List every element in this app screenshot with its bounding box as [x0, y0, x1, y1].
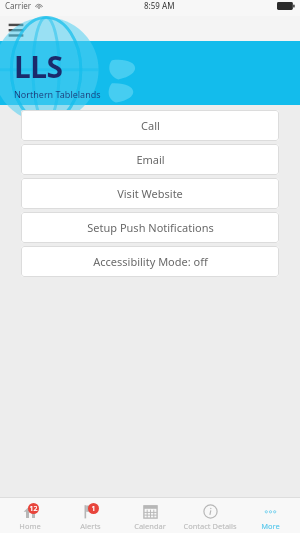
- staticText: Carrier: [5, 0, 32, 11]
- button[interactable]: Visit Website: [21, 178, 279, 209]
- staticText: Contact Details: [183, 521, 237, 531]
- button[interactable]: Accessibility Mode: off: [21, 246, 279, 277]
- staticText: Accessibility Mode: off: [93, 254, 208, 269]
- button[interactable]: Email: [21, 144, 279, 175]
- staticText: More: [261, 521, 280, 531]
- staticText: 12: [29, 504, 38, 514]
- button[interactable]: 1: [60, 500, 120, 531]
- staticText: Email: [136, 152, 165, 167]
- button[interactable]: Setup Push Notifications: [21, 212, 279, 243]
- staticText: Call: [141, 118, 160, 133]
- button[interactable]: Call: [21, 110, 279, 141]
- staticText: 8:59 AM: [144, 0, 175, 11]
- staticText: Home: [19, 521, 41, 531]
- staticText: LLS: [14, 46, 63, 87]
- button[interactable]: Contact Details: [180, 500, 240, 531]
- staticText: 1: [91, 504, 96, 514]
- staticText: Northern Tablelands: [14, 88, 101, 100]
- staticText: Alerts: [80, 521, 101, 531]
- button[interactable]: 12: [0, 500, 60, 531]
- button[interactable]: More: [240, 500, 300, 531]
- staticText: Setup Push Notifications: [87, 220, 214, 235]
- button[interactable]: Calendar: [120, 500, 180, 531]
- staticText: Calendar: [134, 521, 166, 531]
- staticText: Visit Website: [117, 186, 183, 201]
- button[interactable]: Menu: [4, 17, 28, 41]
